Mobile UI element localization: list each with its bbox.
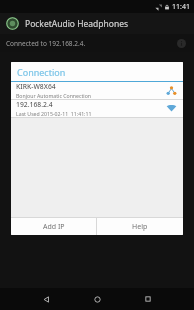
staticText: Bonjour Automatic Connection — [16, 92, 92, 99]
staticText: PocketAudio Headphones — [25, 18, 129, 30]
staticText: Last Used 2015-02-11 11:41:11 — [16, 110, 92, 117]
staticText: Connection — [17, 66, 66, 78]
staticText: Connected to 192.168.2.4. — [6, 39, 86, 48]
button[interactable]: 192.168.2.4 — [11, 100, 183, 117]
staticText: Add IP — [43, 222, 65, 232]
button[interactable]: Home — [89, 291, 105, 307]
staticText: Help — [132, 222, 148, 232]
staticText: KIRK-W8X64 — [16, 82, 56, 91]
button[interactable]: Recent apps — [140, 291, 156, 307]
staticText: 11:41 — [172, 2, 190, 12]
button[interactable]: Back — [38, 291, 54, 307]
button[interactable]: KIRK-W8X64 — [11, 82, 183, 99]
button[interactable]: Info — [176, 38, 187, 49]
button[interactable]: Add IP — [11, 218, 96, 235]
staticText: 192.168.2.4 — [16, 100, 53, 109]
button[interactable]: Help — [97, 218, 183, 235]
